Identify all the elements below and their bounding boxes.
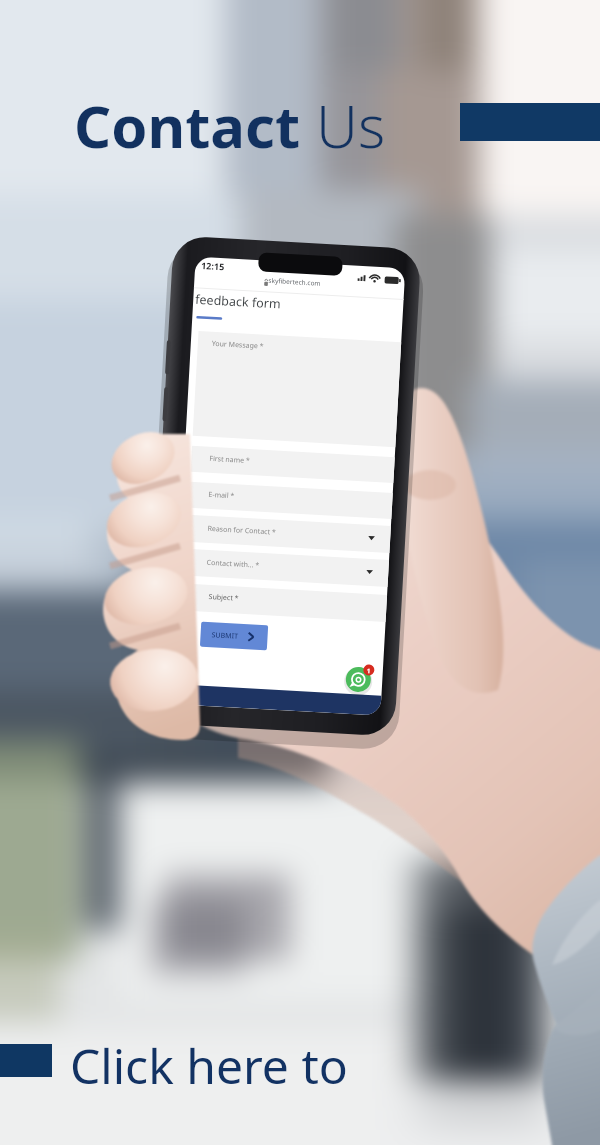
button[interactable]: SUBMIT [200, 622, 268, 650]
staticText: Subject * [208, 592, 239, 604]
staticText: Click here to [70, 1033, 348, 1098]
staticText: Contact [74, 86, 301, 165]
staticText: 12:15 [201, 259, 225, 272]
staticText: Your Message * [211, 339, 264, 352]
staticText: Reason for Contact * [207, 524, 277, 538]
staticText: skyfibertech.com [268, 276, 322, 288]
staticText: SUBMIT [211, 630, 239, 642]
staticText: 1 [367, 667, 371, 675]
button[interactable]: Chat on WhatsApp [344, 665, 373, 694]
staticText: Us [301, 86, 386, 165]
staticText: Contact with... * [206, 558, 260, 571]
staticText: E-mail * [208, 490, 235, 501]
staticText: First name * [209, 454, 251, 466]
staticText: feedback form [195, 291, 282, 313]
